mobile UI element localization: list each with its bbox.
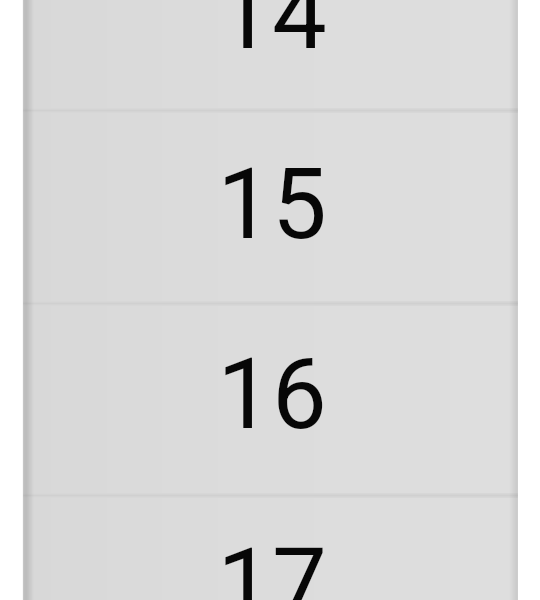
staticText: 17 xyxy=(217,527,327,600)
staticText: 16 xyxy=(217,337,327,451)
button[interactable]: 16 xyxy=(23,303,518,495)
staticText: 14 xyxy=(217,0,327,71)
button[interactable]: 17 xyxy=(23,495,518,600)
button[interactable]: 15 xyxy=(23,111,518,303)
button[interactable]: 14 xyxy=(23,0,518,111)
staticText: 15 xyxy=(217,147,327,261)
